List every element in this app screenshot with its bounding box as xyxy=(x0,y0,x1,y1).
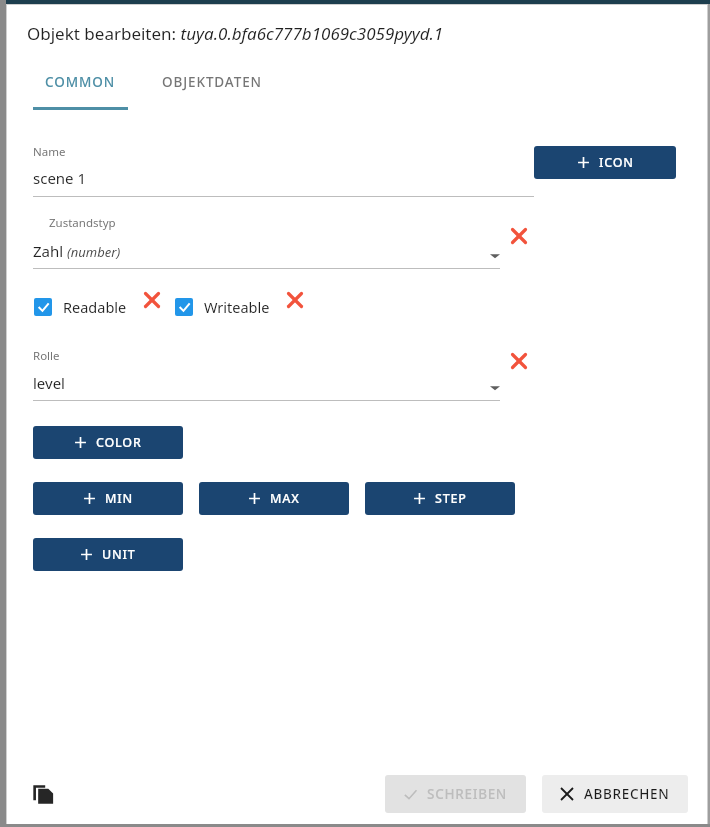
staticText: Name xyxy=(33,144,66,160)
button[interactable]: MAX xyxy=(199,482,349,515)
button[interactable]: Remove xyxy=(506,348,532,374)
button[interactable]: STEP xyxy=(365,482,515,515)
staticText: UNIT xyxy=(102,546,136,563)
staticText: Objekt bearbeiten: tuya.0.bfa6c777b1069c… xyxy=(27,22,444,45)
button[interactable]: Remove xyxy=(139,287,165,313)
staticText: SCHREIBEN xyxy=(427,785,508,803)
button[interactable]: ICON xyxy=(534,146,676,179)
button[interactable]: Readable xyxy=(34,297,127,317)
button[interactable]: COMMON xyxy=(43,71,118,93)
staticText: ICON xyxy=(599,154,634,171)
button[interactable]: OBJEKTDATEN xyxy=(160,71,264,93)
staticText: ABBRECHEN xyxy=(584,785,670,803)
staticText: MIN xyxy=(105,490,134,507)
button[interactable]: Copy xyxy=(26,777,60,811)
staticText: Writeable xyxy=(204,297,270,317)
button[interactable]: COLOR xyxy=(33,426,183,459)
staticText: Zustandstyp xyxy=(49,215,116,231)
staticText: COMMON xyxy=(45,73,116,91)
button[interactable]: SCHREIBEN xyxy=(385,775,526,813)
staticText: Rolle xyxy=(33,348,60,364)
staticText: Readable xyxy=(63,297,127,317)
staticText: COLOR xyxy=(96,434,142,451)
staticText: MAX xyxy=(270,490,300,507)
button[interactable]: ABBRECHEN xyxy=(542,775,688,813)
staticText: OBJEKTDATEN xyxy=(162,73,262,91)
button[interactable]: Remove xyxy=(506,223,532,249)
button[interactable]: UNIT xyxy=(33,538,183,571)
button[interactable]: Remove xyxy=(282,287,308,313)
staticText: scene 1 xyxy=(33,168,87,188)
button[interactable]: MIN xyxy=(33,482,183,515)
staticText: Zahl (number) xyxy=(33,241,121,261)
staticText: STEP xyxy=(435,490,467,507)
button[interactable]: Writeable xyxy=(175,297,270,317)
staticText: level xyxy=(33,373,65,393)
